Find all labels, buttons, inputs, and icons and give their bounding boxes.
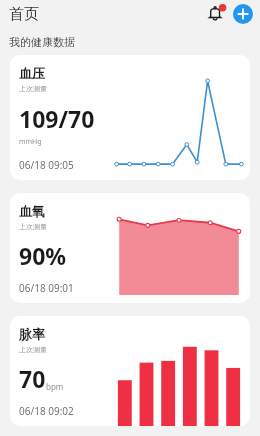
staticText: 血压 <box>19 65 45 81</box>
staticText: bpm <box>46 381 64 392</box>
button[interactable]: 脉率 <box>10 316 250 426</box>
staticText: 血氧 <box>19 203 45 219</box>
staticText: 首页 <box>9 5 39 24</box>
staticText: 上次测量 <box>19 345 47 354</box>
button[interactable]: Add <box>233 4 253 24</box>
staticText: 06/18 09:05 <box>19 158 74 172</box>
staticText: 70 <box>19 363 46 394</box>
staticText: 06/18 09:01 <box>19 281 74 295</box>
staticText: 109/70 <box>19 103 95 134</box>
staticText: 我的健康数据 <box>9 35 75 49</box>
button[interactable]: Notifications <box>205 3 227 25</box>
button[interactable]: 血压 <box>10 55 250 180</box>
staticText: 上次测量 <box>19 222 47 231</box>
staticText: 脉率 <box>19 326 45 342</box>
staticText: 上次测量 <box>19 84 47 93</box>
button[interactable]: 血氧 <box>10 193 250 303</box>
staticText: 06/18 09:02 <box>19 404 74 418</box>
staticText: 90% <box>19 240 67 271</box>
staticText: mmHg <box>19 137 42 147</box>
